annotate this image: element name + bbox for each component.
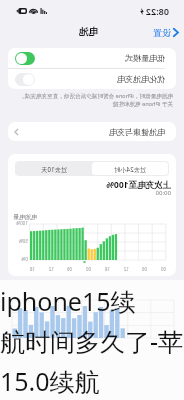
staticText: 上次充电至100% [106, 179, 171, 191]
staticText: 12 [48, 266, 54, 272]
staticText: 电池 [79, 26, 98, 38]
staticText: 航时间多久了-苹 [0, 324, 184, 358]
staticText: 06 [141, 266, 147, 272]
staticText: 50% [18, 238, 28, 244]
staticText: 电池电量 [13, 213, 37, 221]
staticText: iphone15续 [0, 284, 136, 318]
button[interactable]: 过去24小时 [92, 162, 168, 175]
button[interactable]: 低电量模式 [15, 48, 165, 68]
staticText: 00:00 [155, 189, 171, 197]
staticText: 低电量模式 [125, 53, 165, 63]
staticText: 电池电量低时，iPhone 会暂时减少后台活动，直至充电完成。 关于 iPhon… [9, 92, 173, 107]
staticText: 电池健康与充电 [109, 127, 165, 137]
staticText: 过去10天 [41, 165, 67, 173]
staticText: 12 [123, 266, 129, 272]
staticText: 15.0续航 [0, 364, 100, 398]
staticText: 100% [16, 220, 28, 226]
staticText: 06 [66, 266, 72, 272]
staticText: 00 [160, 266, 166, 272]
button[interactable]: 电池健康与充电 [8, 122, 176, 141]
button[interactable]: 过去10天 [16, 162, 92, 175]
staticText: 18 [104, 266, 110, 272]
staticText: 08:22 [145, 5, 169, 17]
button[interactable]: 设置 [153, 27, 180, 38]
staticText: 0% [21, 256, 28, 262]
staticText: 18 [29, 266, 35, 272]
button[interactable]: 优化电池充电 [15, 69, 165, 89]
staticText: 过去24小时 [114, 165, 146, 173]
staticText: 设置 [153, 27, 171, 38]
staticText: 00 [85, 266, 91, 272]
staticText: 优化电池充电 [117, 74, 165, 84]
